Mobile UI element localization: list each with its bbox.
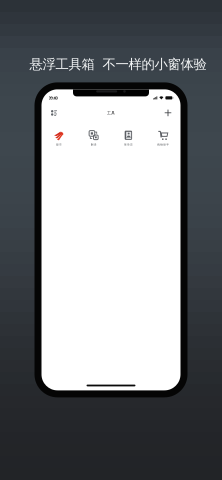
staticText: 翻译 [91, 143, 97, 146]
staticText: 09:40 [48, 95, 57, 100]
staticText: 股市 [56, 143, 62, 146]
button[interactable]: 翻译 [76, 127, 111, 149]
button[interactable]: 购物助手 [146, 127, 181, 149]
button[interactable]: 股市 [41, 127, 76, 149]
staticText: 菜单页 [124, 143, 133, 146]
staticText: 工具 [107, 110, 115, 115]
button[interactable]: 菜单页 [111, 127, 146, 149]
button[interactable]: Add [161, 106, 174, 119]
button[interactable]: Menu [47, 106, 60, 119]
staticText: 购物助手 [157, 143, 169, 146]
staticText: 悬浮工具箱 不一样的小窗体验 [29, 56, 206, 72]
